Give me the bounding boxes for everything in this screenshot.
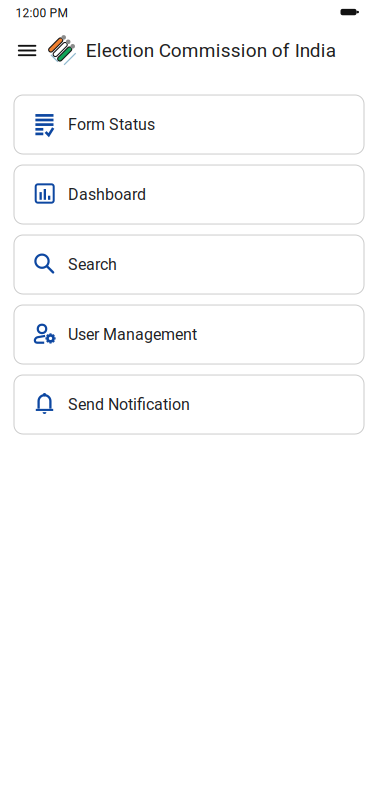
- staticText: Election Commission of India: [86, 39, 336, 62]
- staticText: Search: [68, 255, 117, 274]
- button[interactable]: Form Status: [14, 95, 364, 154]
- button[interactable]: Menu: [18, 45, 36, 56]
- staticText: User Management: [68, 325, 197, 344]
- staticText: Dashboard: [68, 185, 146, 204]
- staticText: Send Notification: [68, 395, 190, 414]
- button[interactable]: Search: [14, 235, 364, 294]
- button[interactable]: User Management: [14, 305, 364, 364]
- button[interactable]: Dashboard: [14, 165, 364, 224]
- staticText: Form Status: [68, 115, 155, 134]
- button[interactable]: Send Notification: [14, 375, 364, 434]
- staticText: 12:00 PM: [15, 6, 67, 20]
